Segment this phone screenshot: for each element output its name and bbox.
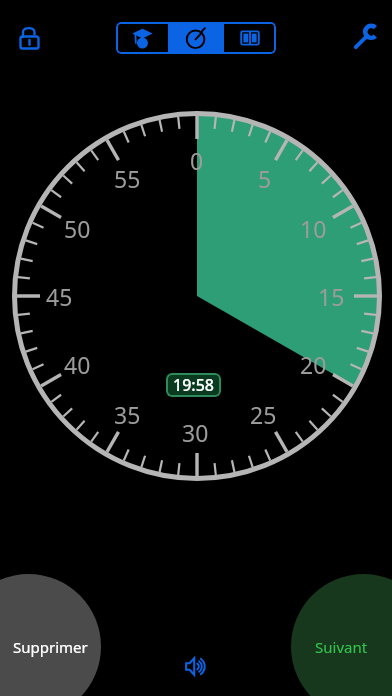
- button[interactable]: Supprimer: [0, 574, 101, 696]
- staticText: 0: [190, 145, 204, 176]
- button[interactable]: 19:58: [173, 374, 214, 396]
- button[interactable]: Sound: [178, 648, 214, 684]
- button[interactable]: Book mode: [224, 22, 276, 54]
- staticText: 10: [300, 213, 327, 244]
- staticText: 20: [300, 349, 327, 380]
- button[interactable]: Study mode: [116, 22, 168, 54]
- staticText: 55: [114, 163, 141, 194]
- staticText: 35: [114, 399, 141, 430]
- button[interactable]: Settings: [347, 19, 383, 55]
- staticText: 40: [64, 349, 91, 380]
- button[interactable]: Timer dial: [0, 0, 392, 696]
- staticText: 25: [250, 399, 277, 430]
- staticText: 45: [46, 281, 73, 312]
- staticText: 30: [182, 417, 209, 448]
- staticText: 19:58: [173, 374, 214, 396]
- staticText: 15: [318, 281, 345, 312]
- staticText: Suivant: [315, 637, 368, 657]
- staticText: Supprimer: [13, 637, 88, 657]
- staticText: 5: [258, 163, 272, 194]
- staticText: 50: [64, 213, 91, 244]
- button[interactable]: Suivant: [291, 574, 392, 696]
- button[interactable]: Lock: [11, 20, 47, 56]
- button[interactable]: Timer mode: [170, 22, 222, 54]
